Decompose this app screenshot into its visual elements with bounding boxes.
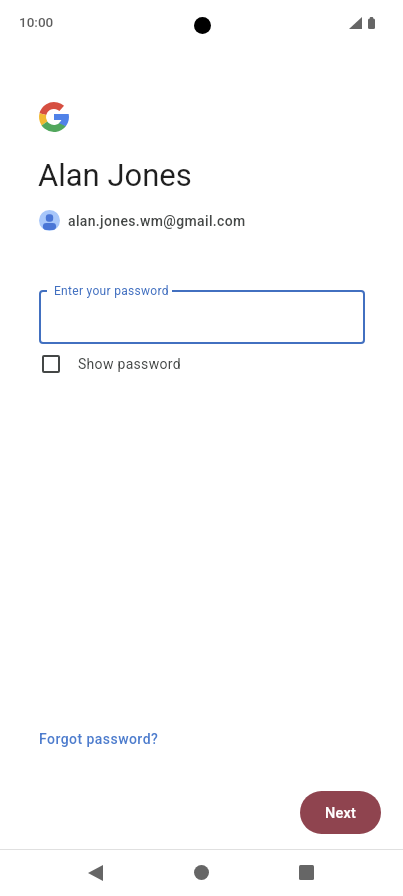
staticText: Show password bbox=[78, 356, 181, 372]
staticText: 10:00 bbox=[19, 14, 54, 30]
staticText: Alan Jones bbox=[38, 157, 192, 193]
button[interactable]: Next bbox=[300, 791, 381, 834]
button[interactable]: Show password bbox=[36, 349, 189, 379]
button[interactable]: Home bbox=[177, 849, 225, 896]
button[interactable]: Back bbox=[71, 849, 119, 896]
staticText: Next bbox=[325, 805, 356, 822]
button[interactable]: Recent apps bbox=[282, 849, 330, 896]
button[interactable]: Forgot password? bbox=[33, 723, 165, 755]
staticText: alan.jones.wm@gmail.com bbox=[68, 213, 246, 229]
staticText: Enter your password bbox=[54, 284, 169, 298]
